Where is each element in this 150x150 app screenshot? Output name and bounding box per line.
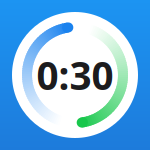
staticText: 0:30	[36, 49, 113, 101]
